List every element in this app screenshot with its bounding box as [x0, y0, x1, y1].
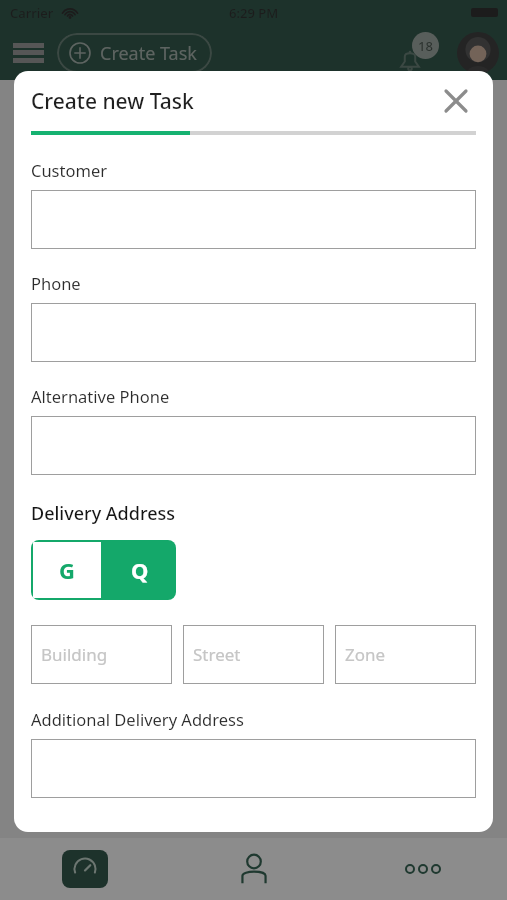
button[interactable]: Q [103, 540, 176, 600]
button[interactable] [31, 303, 476, 362]
button[interactable]: G [33, 542, 101, 598]
staticText: 6:29 PM [229, 4, 279, 22]
button[interactable]: Notifications [397, 32, 439, 74]
button[interactable] [31, 416, 476, 475]
staticText: Create Task [100, 41, 197, 66]
staticText: Carrier [10, 4, 54, 22]
button[interactable]: Building [31, 625, 172, 684]
staticText: G [59, 555, 75, 585]
button[interactable]: Profile [457, 32, 499, 74]
button[interactable]: Create Task [57, 33, 212, 73]
button[interactable]: More [393, 851, 453, 887]
button[interactable]: Zone [335, 625, 476, 684]
button[interactable]: Menu [13, 40, 44, 65]
staticText: Q [131, 555, 149, 585]
staticText: Zone [345, 643, 386, 666]
staticText: Phone [31, 272, 81, 294]
button[interactable]: Dashboard [62, 850, 108, 888]
button[interactable]: Street [183, 625, 324, 684]
staticText: Building [41, 643, 108, 666]
staticText: Alternative Phone [31, 385, 170, 407]
button[interactable] [31, 190, 476, 249]
staticText: Street [193, 643, 241, 666]
button[interactable]: Close [436, 81, 476, 121]
button[interactable]: Account [230, 845, 278, 893]
staticText: Create new Task [31, 87, 194, 116]
staticText: Delivery Address [31, 501, 176, 526]
staticText: Customer [31, 159, 108, 181]
staticText: 18 [418, 37, 433, 55]
staticText: Additional Delivery Address [31, 708, 244, 730]
button[interactable] [31, 739, 476, 798]
